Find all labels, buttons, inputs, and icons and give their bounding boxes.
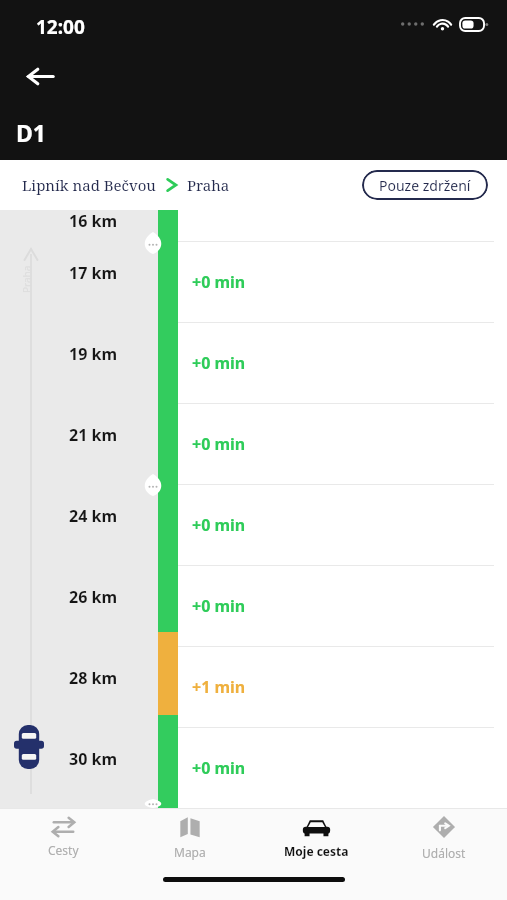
- staticText: Mapa: [174, 844, 206, 860]
- button[interactable]: Moje cesta: [253, 809, 380, 867]
- staticText: +0 min: [192, 352, 246, 374]
- button[interactable]: +0 min: [178, 484, 507, 565]
- staticText: +0 min: [192, 757, 246, 779]
- button[interactable]: +0 min: [178, 241, 507, 322]
- staticText: 26 km: [69, 586, 117, 608]
- staticText: Praha: [20, 265, 34, 293]
- staticText: Cesty: [48, 842, 79, 858]
- button[interactable]: Cesty: [0, 809, 126, 867]
- staticText: Lipník nad Bečvou: [22, 175, 156, 195]
- staticText: +0 min: [192, 514, 246, 536]
- staticText: 19 km: [69, 343, 117, 365]
- staticText: Pouze zdržení: [379, 176, 471, 195]
- staticText: +0 min: [192, 433, 246, 455]
- button[interactable]: Mapa: [126, 809, 253, 867]
- staticText: +1 min: [192, 676, 246, 698]
- button[interactable]: +0 min: [178, 565, 507, 646]
- button[interactable]: +0 min: [178, 322, 507, 403]
- button[interactable]: +0 min: [178, 403, 507, 484]
- staticText: 21 km: [69, 424, 117, 446]
- staticText: 16 km: [69, 210, 117, 232]
- staticText: D1: [16, 117, 46, 148]
- staticText: Praha: [187, 175, 230, 195]
- staticText: Událost: [422, 845, 466, 861]
- staticText: 28 km: [69, 667, 117, 689]
- staticText: +0 min: [192, 595, 246, 617]
- staticText: 12:00: [36, 14, 85, 40]
- staticText: 24 km: [69, 505, 117, 527]
- staticText: +0 min: [192, 271, 246, 293]
- button[interactable]: +0 min: [178, 727, 507, 808]
- staticText: 17 km: [69, 262, 117, 284]
- button[interactable]: Událost: [380, 809, 507, 867]
- button[interactable]: Back: [16, 52, 64, 100]
- staticText: 30 km: [69, 748, 117, 770]
- staticText: Moje cesta: [284, 843, 349, 859]
- button[interactable]: +1 min: [178, 646, 507, 727]
- button[interactable]: Pouze zdržení: [362, 170, 488, 200]
